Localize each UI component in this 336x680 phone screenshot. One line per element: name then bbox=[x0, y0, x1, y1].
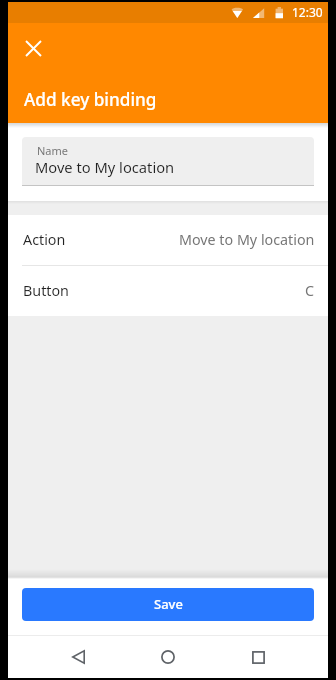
staticText: Button bbox=[23, 281, 69, 300]
staticText: Move to My location bbox=[35, 157, 175, 177]
staticText: Save bbox=[154, 595, 183, 613]
staticText: Add key binding bbox=[24, 88, 157, 111]
button[interactable]: Back bbox=[54, 636, 102, 678]
staticText: Action bbox=[23, 230, 66, 249]
staticText: C bbox=[305, 281, 315, 300]
staticText: 12:30 bbox=[292, 4, 323, 20]
button[interactable]: Name bbox=[22, 137, 314, 186]
staticText: Name bbox=[37, 143, 69, 158]
button[interactable]: Home bbox=[144, 636, 192, 678]
button[interactable]: Button bbox=[8, 266, 328, 316]
button[interactable]: Action bbox=[8, 215, 328, 265]
button[interactable]: Save bbox=[22, 588, 314, 621]
staticText: Move to My location bbox=[179, 230, 315, 249]
button[interactable]: Recent apps bbox=[234, 636, 282, 678]
button[interactable]: Close bbox=[15, 30, 51, 66]
